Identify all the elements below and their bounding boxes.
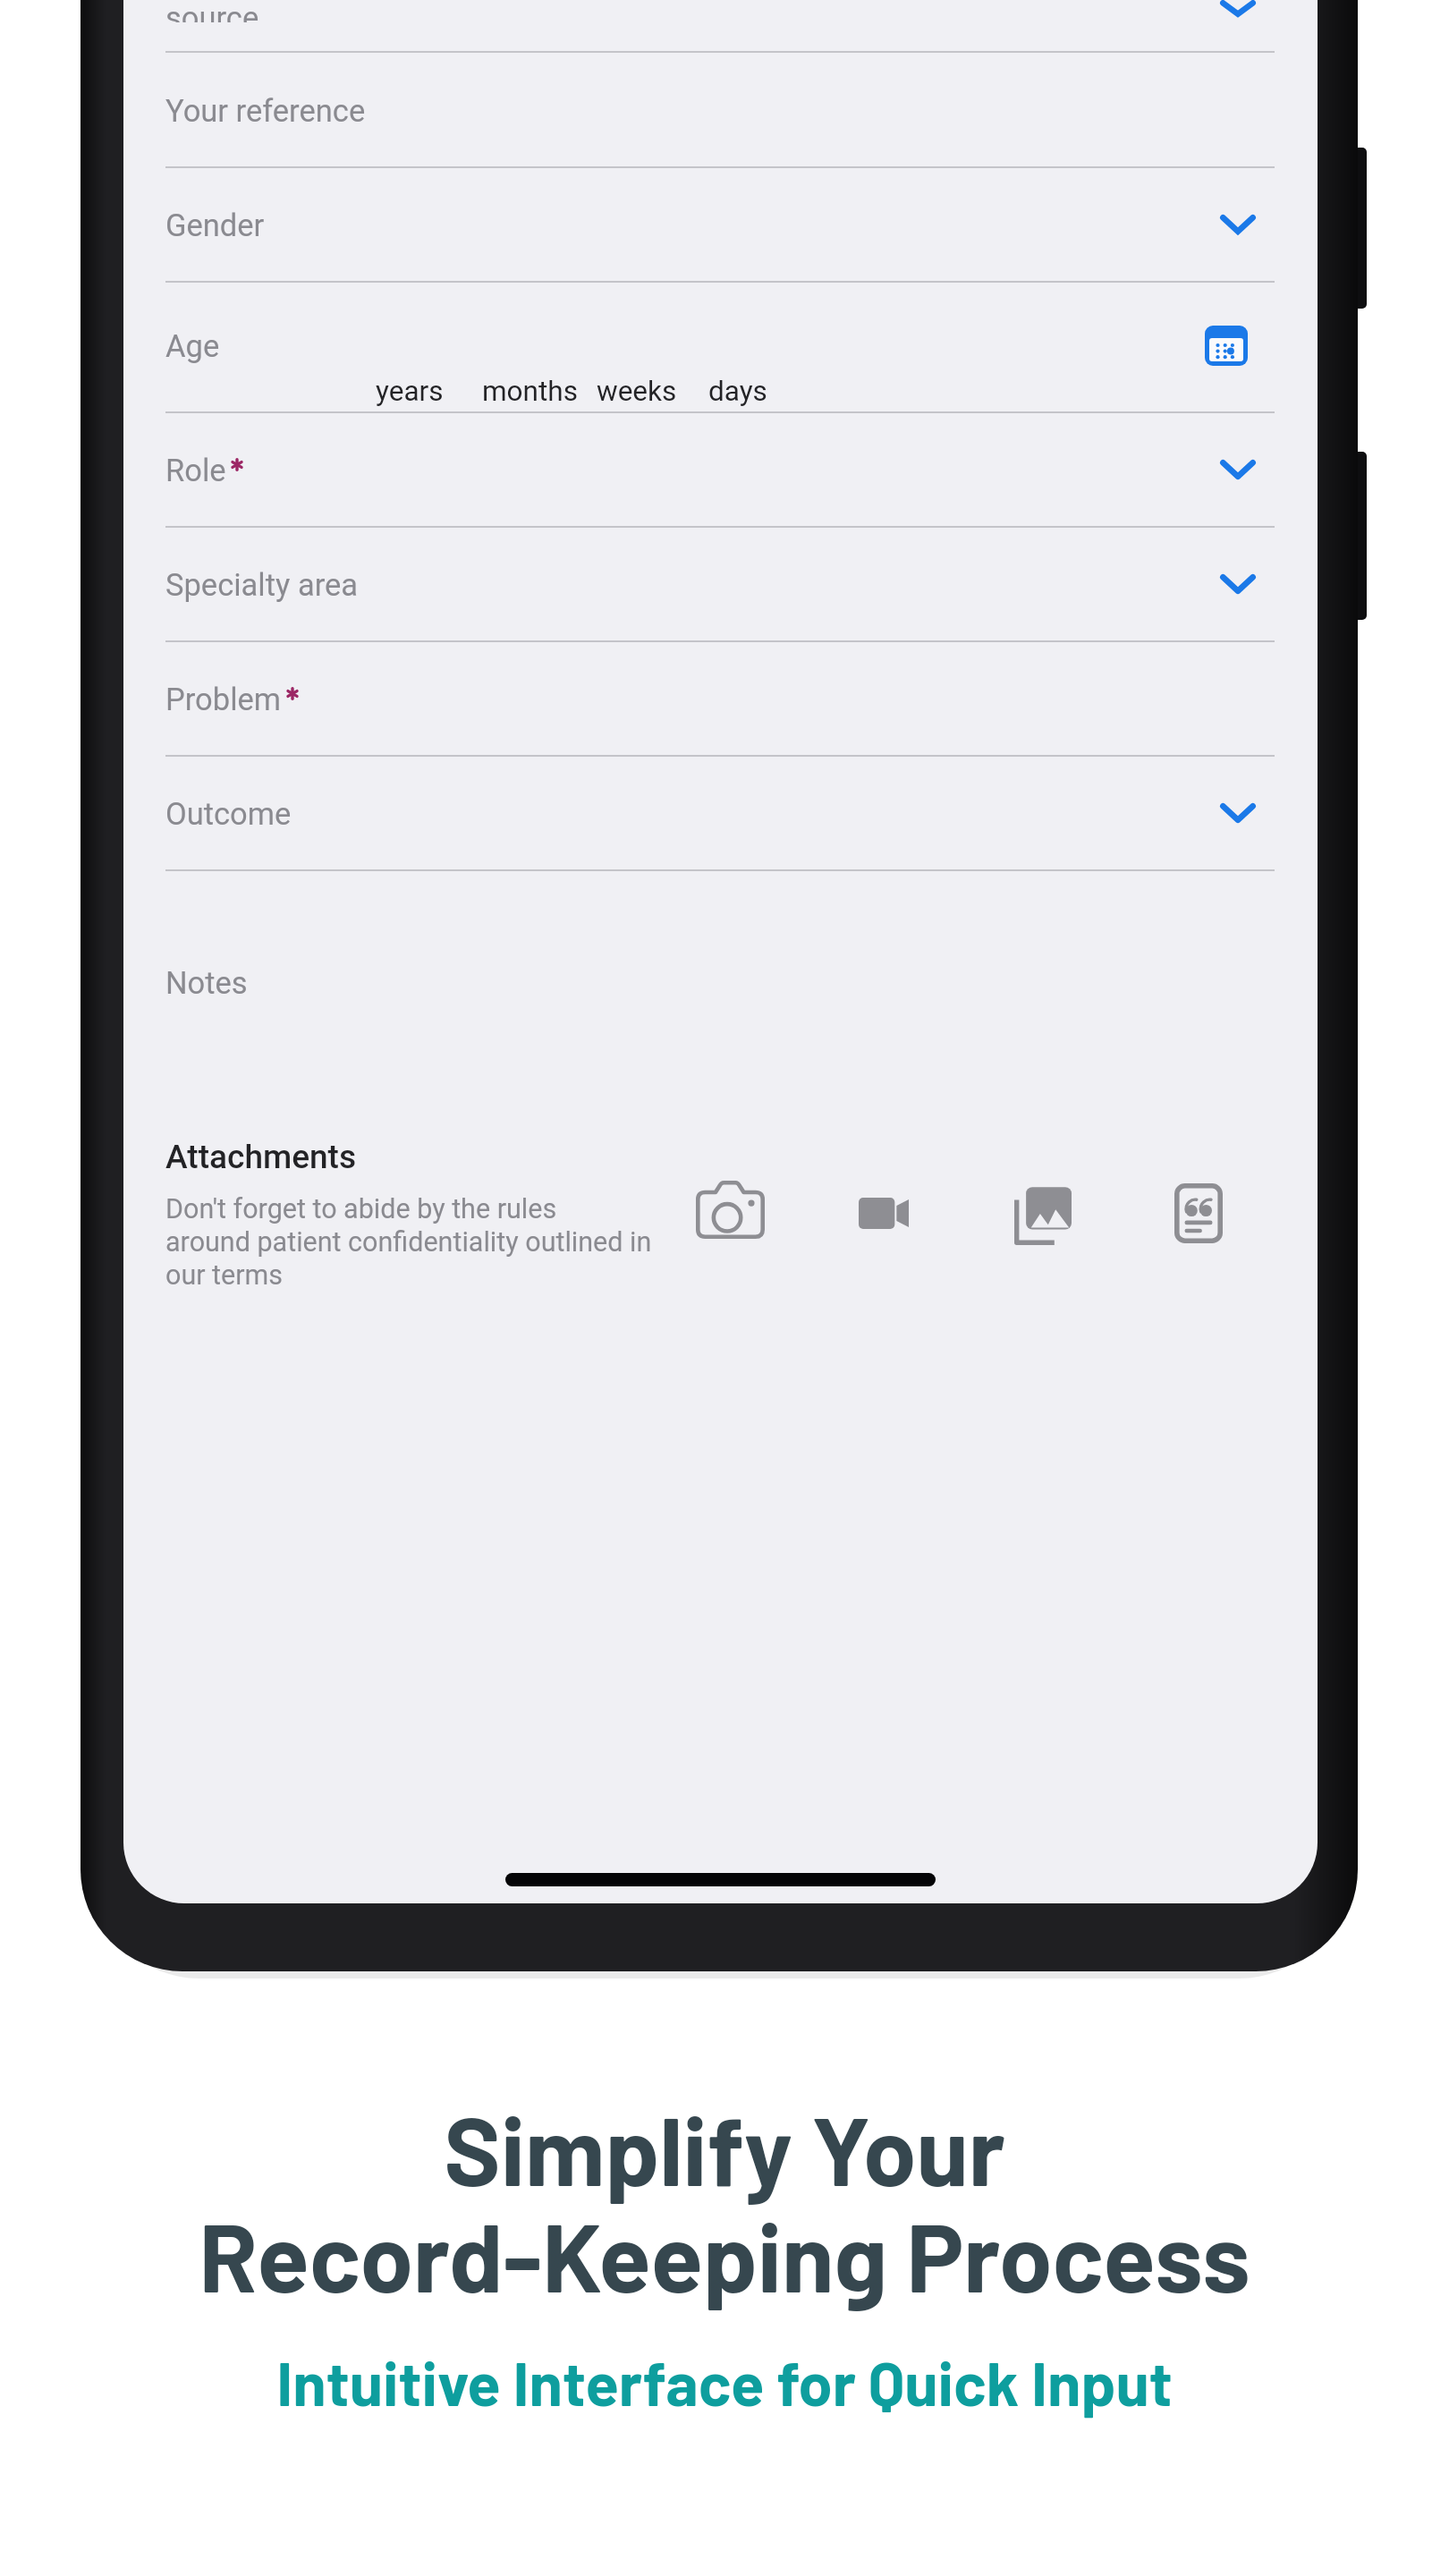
staticText: Attachments [165, 1138, 357, 1176]
button[interactable]: Specialty area [123, 528, 1318, 642]
button[interactable]: Age [123, 283, 1318, 413]
button[interactable]: Outcome [123, 757, 1318, 871]
button[interactable]: Gender [123, 168, 1318, 283]
button[interactable]: Your reference [123, 53, 1318, 168]
button[interactable]: Add a note [1174, 1183, 1223, 1243]
button[interactable]: Problem [123, 642, 1318, 757]
staticText: Don't forget to abide by the rules aroun… [165, 1193, 652, 1292]
staticText: Gender [165, 208, 265, 243]
staticText: Age [165, 328, 220, 364]
staticText: Simplify Your Record-Keeping Process [199, 2090, 1250, 2312]
staticText: Intuitive Interface for Quick Input [276, 2344, 1173, 2418]
button[interactable]: Pick a date [1205, 326, 1248, 366]
staticText: Your reference [165, 93, 366, 129]
staticText: months [482, 375, 578, 408]
staticText: Outcome [165, 796, 292, 832]
button[interactable]: Record a video [859, 1198, 911, 1229]
button[interactable]: Role [123, 413, 1318, 528]
button[interactable]: Take a photo [696, 1181, 765, 1239]
staticText: Specialty area [165, 567, 359, 603]
button[interactable]: Pick from gallery [1014, 1186, 1072, 1245]
staticText: source [165, 0, 259, 22]
button[interactable]: source [123, 0, 1318, 53]
staticText: weeks [597, 375, 677, 408]
staticText: days [708, 375, 767, 408]
staticText: Notes [165, 965, 248, 1001]
staticText: Role [165, 453, 226, 488]
staticText: years [376, 375, 444, 408]
staticText: Problem [165, 682, 282, 717]
